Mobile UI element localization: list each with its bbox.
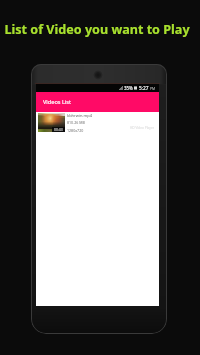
staticText: 810.26 MB — [67, 120, 85, 125]
staticText: List of Video you want to Play — [0, 21, 197, 38]
staticText: 5:27 — [139, 85, 149, 92]
staticText: 1280x720 — [67, 128, 84, 133]
staticText: PM — [150, 86, 156, 91]
staticText: 35% — [124, 85, 133, 91]
staticText: Videos List — [43, 98, 71, 106]
staticText: HD Video Player — [130, 126, 155, 130]
button[interactable]: Videos List — [36, 92, 159, 112]
staticText: kbhrwin.mp4 — [67, 113, 92, 118]
button[interactable]: 00:43 — [36, 112, 159, 134]
staticText: 00:43 — [54, 127, 63, 132]
